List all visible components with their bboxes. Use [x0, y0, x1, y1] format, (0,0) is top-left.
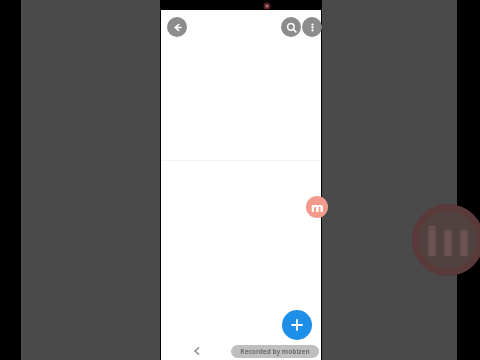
button[interactable]: More options: [302, 17, 322, 37]
staticText: m: [311, 198, 324, 216]
button[interactable]: Add: [282, 310, 312, 340]
button[interactable]: Mobizen recorder: [306, 196, 328, 218]
button[interactable]: Back: [167, 17, 187, 37]
button[interactable]: Back: [189, 343, 205, 359]
button[interactable]: Search: [281, 17, 301, 37]
staticText: Recorded by mobizen: [240, 347, 310, 356]
